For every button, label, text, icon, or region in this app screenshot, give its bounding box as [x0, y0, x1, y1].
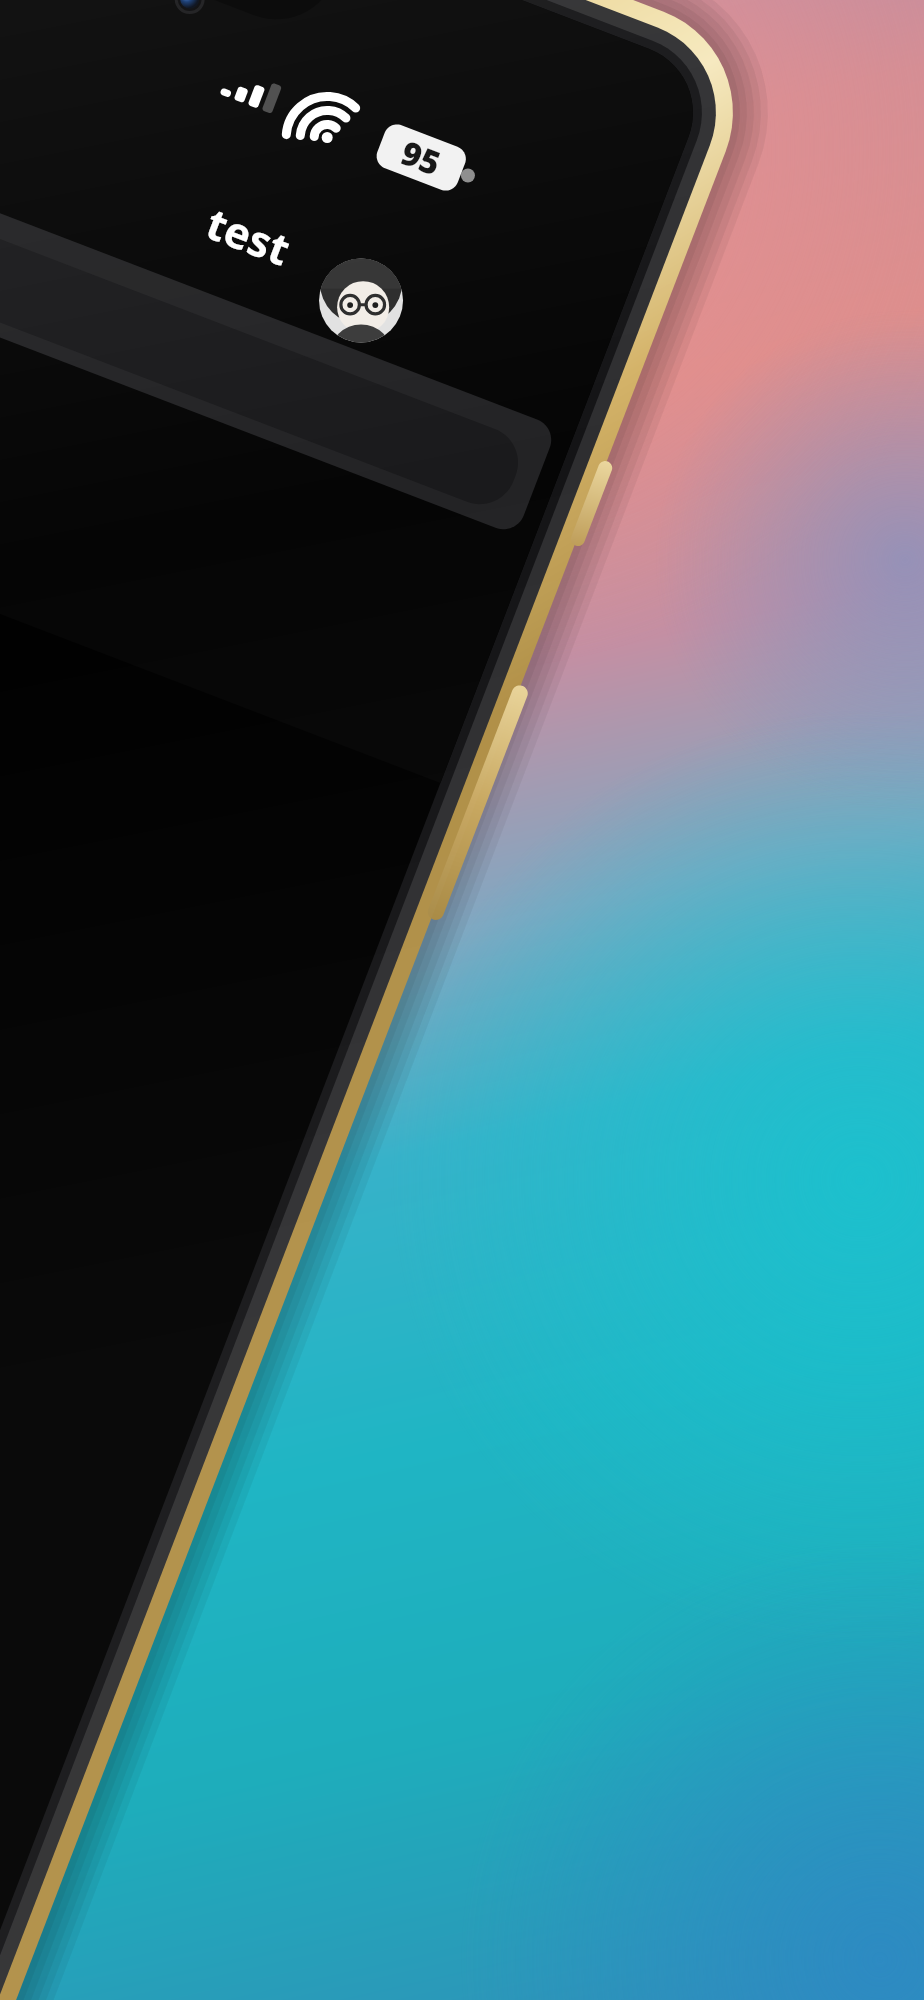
button[interactable]: Phone showing music app	[0, 0, 924, 2000]
